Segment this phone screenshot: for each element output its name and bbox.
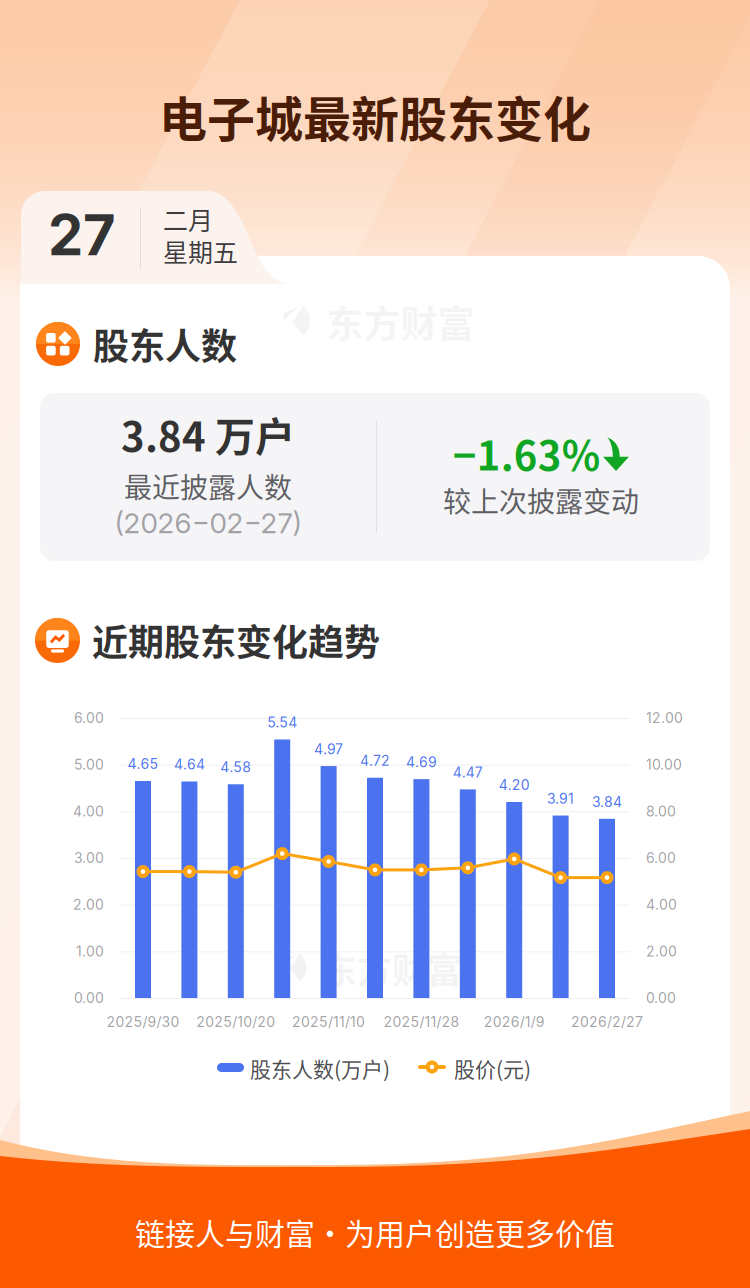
staticText: 2025/11/10 xyxy=(292,1013,365,1030)
staticText: 4.00 xyxy=(646,896,677,913)
staticText: −1.63% xyxy=(453,424,601,482)
staticText: 4.65 xyxy=(127,755,158,772)
staticText: 0.00 xyxy=(74,989,104,1006)
staticText: 东方财富 xyxy=(322,943,462,994)
staticText: 4.58 xyxy=(220,759,251,776)
staticText: 10.00 xyxy=(646,756,682,773)
staticText: 近期股东变化趋势 xyxy=(92,614,380,666)
staticText: 股东人数 xyxy=(93,318,237,370)
staticText: 较上次披露变动 xyxy=(443,480,639,520)
staticText: 0.00 xyxy=(646,989,676,1006)
staticText: 2.00 xyxy=(646,943,677,960)
staticText: 2026/2/27 xyxy=(571,1013,643,1030)
staticText: 东方财富 xyxy=(327,295,475,349)
staticText: 1.00 xyxy=(76,943,104,960)
staticText: 4.00 xyxy=(73,803,104,820)
staticText: 二月 xyxy=(163,201,213,237)
staticText: 2025/10/20 xyxy=(196,1013,275,1030)
staticText: 12.00 xyxy=(646,709,683,726)
staticText: 5.00 xyxy=(74,756,104,773)
staticText: 6.00 xyxy=(74,709,104,726)
staticText: 3.00 xyxy=(74,849,104,866)
staticText: 2026/1/9 xyxy=(484,1013,545,1030)
staticText: 4.64 xyxy=(174,756,205,773)
staticText: 电子城最新股东变化 xyxy=(159,81,591,151)
staticText: 3.84 xyxy=(592,793,622,810)
staticText: 27 xyxy=(48,201,116,269)
staticText: 星期五 xyxy=(163,233,238,269)
staticText: 股价(元) xyxy=(454,1053,531,1083)
staticText: 最近披露人数 xyxy=(124,466,292,506)
staticText: 4.20 xyxy=(499,776,530,793)
staticText: 3.91 xyxy=(547,790,574,807)
staticText: 3.84 万户 xyxy=(121,405,295,463)
staticText: 4.72 xyxy=(360,752,390,769)
staticText: 4.69 xyxy=(406,754,437,771)
staticText: 2.00 xyxy=(73,896,104,913)
staticText: 股东人数(万户) xyxy=(250,1053,390,1083)
staticText: (2026−02−27) xyxy=(114,506,301,540)
staticText: 链接人与财富·为用户创造更多价值 xyxy=(135,1210,615,1254)
staticText: 2025/9/30 xyxy=(106,1013,179,1030)
staticText: 4.47 xyxy=(453,764,483,781)
staticText: 4.97 xyxy=(314,741,343,757)
staticText: 8.00 xyxy=(646,803,676,820)
staticText: 5.54 xyxy=(267,714,297,731)
staticText: 2025/11/28 xyxy=(383,1013,459,1030)
staticText: 6.00 xyxy=(646,849,676,866)
